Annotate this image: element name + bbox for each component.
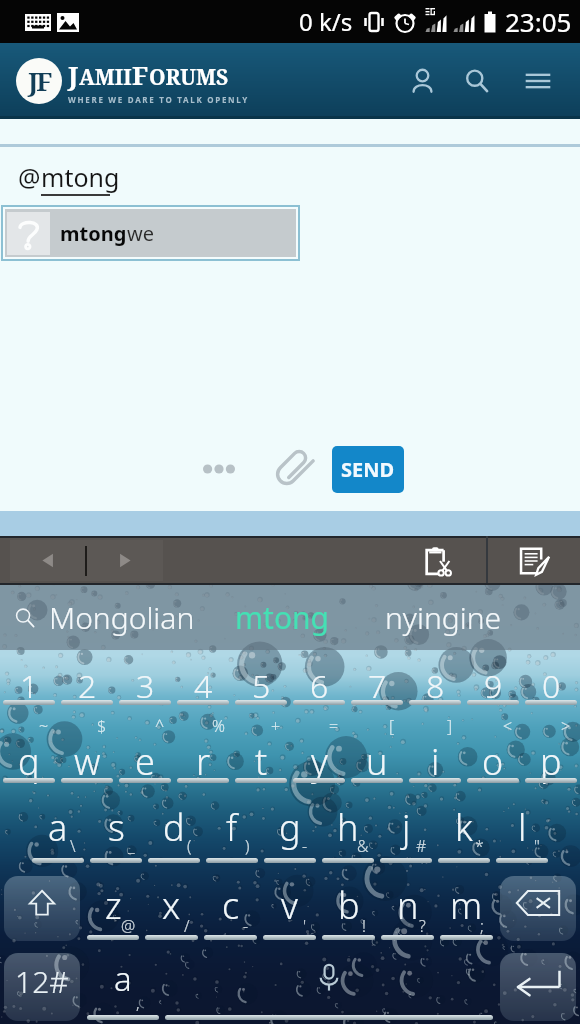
- staticText: ,: [136, 992, 140, 1014]
- staticText: p: [540, 737, 562, 786]
- button[interactable]: 8: [406, 650, 464, 709]
- button[interactable]: mtong: [202, 585, 363, 650]
- staticText: i: [431, 737, 440, 786]
- staticText: q: [18, 737, 40, 786]
- button[interactable]: Mongolian: [42, 585, 202, 650]
- staticText: j: [402, 803, 411, 852]
- staticText: ~: [39, 715, 49, 737]
- staticText: WHERE WE DARE TO TALK OPENLY: [68, 94, 249, 105]
- button[interactable]: x: [142, 867, 201, 944]
- button[interactable]: a: [29, 787, 87, 867]
- button[interactable]: n: [378, 867, 437, 944]
- button[interactable]: q: [0, 709, 58, 787]
- staticText: k: [455, 803, 473, 852]
- staticText: e: [135, 737, 155, 786]
- button[interactable]: More options: [194, 445, 244, 493]
- button[interactable]: Move cursor right: [87, 540, 163, 581]
- button[interactable]: Account: [396, 55, 448, 107]
- button[interactable]: nyingine: [363, 585, 524, 650]
- staticText: $: [97, 715, 107, 737]
- staticText: a: [114, 956, 132, 1001]
- staticText: 0: [542, 664, 561, 708]
- button[interactable]: 6: [290, 650, 348, 709]
- staticText: ': [303, 915, 307, 937]
- staticText: 0 k/s: [299, 5, 353, 38]
- button[interactable]: j: [377, 787, 435, 867]
- button[interactable]: e: [116, 709, 174, 787]
- button[interactable]: k: [435, 787, 493, 867]
- button[interactable]: b: [319, 867, 378, 944]
- staticText: r: [196, 737, 211, 786]
- button[interactable]: w: [58, 709, 116, 787]
- staticText: a: [48, 803, 68, 852]
- staticText: <: [503, 715, 513, 737]
- staticText: F: [132, 57, 149, 92]
- button[interactable]: mtong: [5, 209, 296, 257]
- button[interactable]: Attach file: [266, 445, 318, 493]
- button[interactable]: Backspace: [500, 876, 576, 941]
- staticText: 8: [426, 664, 445, 708]
- button[interactable]: Symbols: [4, 953, 80, 1021]
- button[interactable]: Search suggestions: [8, 601, 42, 635]
- staticText: AMII: [79, 63, 132, 92]
- staticText: [: [389, 715, 395, 737]
- button[interactable]: 3: [116, 650, 174, 709]
- staticText: z: [105, 881, 122, 930]
- button[interactable]: 9: [464, 650, 522, 709]
- button[interactable]: c: [201, 867, 260, 944]
- staticText: 12#: [15, 961, 69, 1002]
- staticText: (: [187, 835, 192, 857]
- button[interactable]: h: [319, 787, 377, 867]
- staticText: m: [450, 881, 483, 930]
- button[interactable]: f: [203, 787, 261, 867]
- staticText: w: [74, 737, 101, 786]
- button[interactable]: p: [522, 709, 580, 787]
- button[interactable]: 5: [232, 650, 290, 709]
- button[interactable]: y: [290, 709, 348, 787]
- button[interactable]: g: [261, 787, 319, 867]
- button[interactable]: Space: [162, 944, 496, 1024]
- button[interactable]: t: [232, 709, 290, 787]
- button[interactable]: s: [87, 787, 145, 867]
- staticText: Mongolian: [49, 597, 195, 638]
- button[interactable]: z: [84, 867, 142, 944]
- staticText: 7: [368, 664, 387, 708]
- staticText: =: [329, 715, 339, 737]
- staticText: ]: [447, 715, 453, 737]
- staticText: 23:05: [505, 4, 572, 39]
- button[interactable]: SEND: [332, 446, 404, 493]
- button[interactable]: Edit: [488, 539, 580, 582]
- button[interactable]: v: [260, 867, 319, 944]
- button[interactable]: Search: [451, 55, 503, 107]
- button[interactable]: 1: [0, 650, 58, 709]
- button[interactable]: Move cursor left: [10, 540, 85, 581]
- button[interactable]: m: [437, 867, 496, 944]
- staticText: ": [534, 835, 540, 857]
- button[interactable]: Enter: [500, 953, 576, 1021]
- button[interactable]: l: [493, 787, 551, 867]
- button[interactable]: a: [84, 944, 162, 1024]
- button[interactable]: o: [464, 709, 522, 787]
- button[interactable]: Menu: [512, 55, 564, 107]
- staticText: ^: [155, 715, 165, 737]
- staticText: h: [337, 803, 359, 852]
- staticText: ORUMS: [149, 63, 229, 92]
- button[interactable]: 7: [348, 650, 406, 709]
- button[interactable]: Shift: [4, 876, 80, 941]
- button[interactable]: 4: [174, 650, 232, 709]
- button[interactable]: d: [145, 787, 203, 867]
- button[interactable]: i: [406, 709, 464, 787]
- button[interactable]: 0: [522, 650, 580, 709]
- staticText: SEND: [341, 456, 395, 483]
- staticText: -: [302, 835, 308, 857]
- button[interactable]: u: [348, 709, 406, 787]
- staticText: JF: [28, 63, 51, 98]
- staticText: _: [128, 835, 135, 857]
- staticText: 5: [252, 664, 271, 708]
- staticText: f: [226, 803, 238, 852]
- button[interactable]: Cut: [394, 539, 486, 582]
- staticText: \: [70, 835, 76, 857]
- staticText: nyingine: [385, 597, 502, 638]
- button[interactable]: r: [174, 709, 232, 787]
- button[interactable]: 2: [58, 650, 116, 709]
